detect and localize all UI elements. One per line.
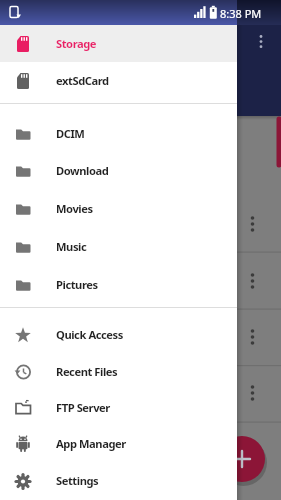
button[interactable] bbox=[219, 436, 265, 482]
button[interactable]: Music bbox=[0, 228, 237, 265]
button[interactable]: extSdCard bbox=[0, 62, 237, 99]
button[interactable]: Download bbox=[0, 152, 237, 189]
button[interactable]: App Manager bbox=[0, 425, 237, 462]
staticText: Settings bbox=[56, 473, 99, 488]
staticText: Storage bbox=[56, 36, 97, 51]
button[interactable]: FTP Server bbox=[0, 389, 237, 426]
staticText: App Manager bbox=[56, 436, 126, 451]
staticText: Quick Access bbox=[56, 327, 123, 342]
staticText: Pictures bbox=[56, 277, 98, 292]
staticText: FTP Server bbox=[56, 400, 110, 415]
button[interactable]: Pictures bbox=[0, 266, 237, 303]
button[interactable]: Quick Access bbox=[0, 316, 237, 353]
staticText: 8:38 PM bbox=[220, 6, 262, 21]
staticText: Recent Files bbox=[56, 364, 118, 379]
staticText: Music bbox=[56, 239, 87, 254]
staticText: DCIM bbox=[56, 126, 85, 141]
button[interactable] bbox=[255, 30, 267, 54]
button[interactable]: Movies bbox=[0, 190, 237, 227]
staticText: Download bbox=[56, 163, 109, 178]
button[interactable]: Recent Files bbox=[0, 353, 237, 390]
staticText: Movies bbox=[56, 201, 93, 216]
button[interactable]: DCIM bbox=[0, 115, 237, 152]
button[interactable]: Settings bbox=[0, 462, 237, 499]
button[interactable]: Storage bbox=[0, 25, 237, 62]
staticText: extSdCard bbox=[56, 73, 109, 88]
